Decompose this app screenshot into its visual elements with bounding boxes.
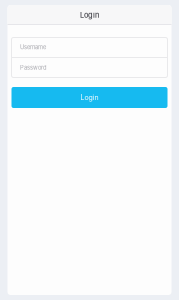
staticText: Password xyxy=(20,64,47,71)
button[interactable]: Login xyxy=(11,87,167,108)
staticText: Login xyxy=(80,11,99,19)
button[interactable]: Password xyxy=(11,58,167,77)
button[interactable]: Username xyxy=(11,37,167,57)
staticText: Login xyxy=(80,93,98,102)
staticText: Username xyxy=(20,44,46,51)
